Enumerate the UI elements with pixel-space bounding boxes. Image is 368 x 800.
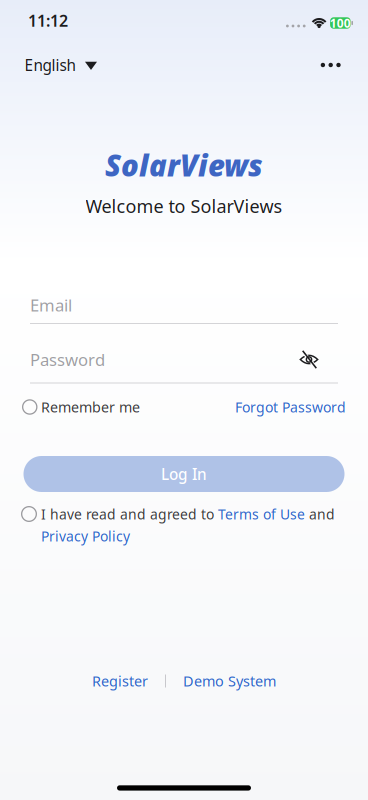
staticText: Privacy Policy bbox=[41, 527, 130, 545]
button[interactable]: Register bbox=[92, 671, 148, 691]
staticText: Demo System bbox=[183, 671, 276, 691]
button[interactable]: Privacy Policy bbox=[41, 527, 130, 545]
staticText: I have read and agreed to bbox=[41, 505, 218, 523]
button[interactable]: English bbox=[24, 55, 97, 75]
button[interactable]: Log In bbox=[23, 456, 344, 492]
staticText: Forgot Password bbox=[235, 397, 346, 417]
button[interactable]: Show password bbox=[299, 350, 318, 369]
staticText: Log In bbox=[161, 464, 207, 484]
staticText: Register bbox=[92, 671, 148, 691]
button[interactable]: Terms of Use bbox=[218, 505, 305, 523]
staticText: 100 bbox=[330, 15, 351, 31]
staticText: Email bbox=[30, 294, 72, 316]
staticText: 11:12 bbox=[28, 10, 68, 31]
button[interactable]: Demo System bbox=[183, 671, 276, 691]
button[interactable]: More options bbox=[321, 63, 341, 67]
staticText: English bbox=[24, 55, 75, 75]
staticText: Password bbox=[30, 348, 105, 371]
staticText: and bbox=[305, 505, 335, 523]
staticText: Terms of Use bbox=[218, 505, 305, 523]
staticText: Welcome to SolarViews bbox=[85, 194, 282, 218]
button[interactable]: Remember me bbox=[22, 397, 140, 417]
button[interactable]: Agree to terms bbox=[21, 506, 37, 522]
button[interactable]: Forgot Password bbox=[235, 397, 346, 417]
staticText: Remember me bbox=[41, 397, 140, 417]
staticText: SolarViews bbox=[105, 145, 263, 185]
